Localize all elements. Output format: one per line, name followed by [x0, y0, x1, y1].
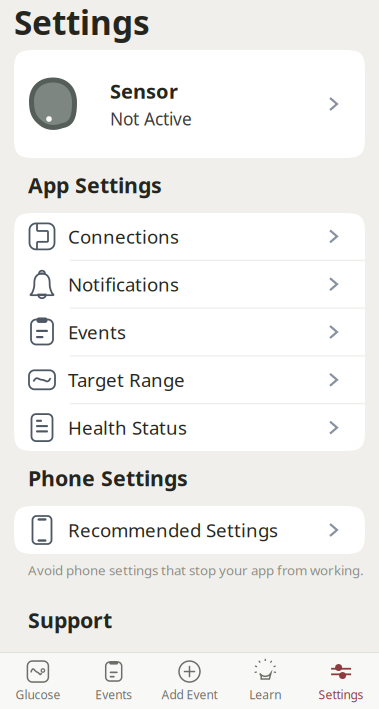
staticText: Target Range	[68, 367, 185, 392]
staticText: Add Event	[161, 686, 217, 702]
staticText: Avoid phone settings that stop your app …	[28, 561, 364, 579]
staticText: Learn	[249, 686, 281, 702]
staticText: Events	[68, 320, 126, 344]
button[interactable]: Health Status	[14, 404, 365, 451]
button[interactable]: Target Range	[14, 356, 365, 403]
staticText: Events	[95, 686, 132, 702]
staticText: Sensor	[110, 78, 178, 104]
staticText: Connections	[68, 224, 179, 249]
staticText: Settings	[14, 0, 150, 44]
staticText: App Settings	[28, 171, 162, 199]
button[interactable]: Connections	[14, 213, 365, 260]
button[interactable]: Notifications	[14, 261, 365, 308]
button[interactable]: Learn	[227, 653, 303, 709]
staticText: Settings	[319, 686, 364, 702]
button[interactable]: Events	[76, 653, 152, 709]
button[interactable]: Settings	[303, 653, 379, 709]
staticText: Health Status	[68, 415, 187, 440]
button[interactable]: Sensor	[14, 50, 365, 158]
button[interactable]: Events	[14, 309, 365, 355]
staticText: Phone Settings	[28, 464, 188, 492]
staticText: Recommended Settings	[68, 518, 278, 542]
staticText: Not Active	[110, 107, 192, 130]
staticText: Support	[28, 606, 112, 634]
button[interactable]: Glucose	[0, 653, 76, 709]
button[interactable]: Add Event	[152, 653, 227, 709]
staticText: Notifications	[68, 272, 179, 297]
staticText: Glucose	[15, 686, 60, 702]
button[interactable]: Recommended Settings	[14, 506, 365, 554]
